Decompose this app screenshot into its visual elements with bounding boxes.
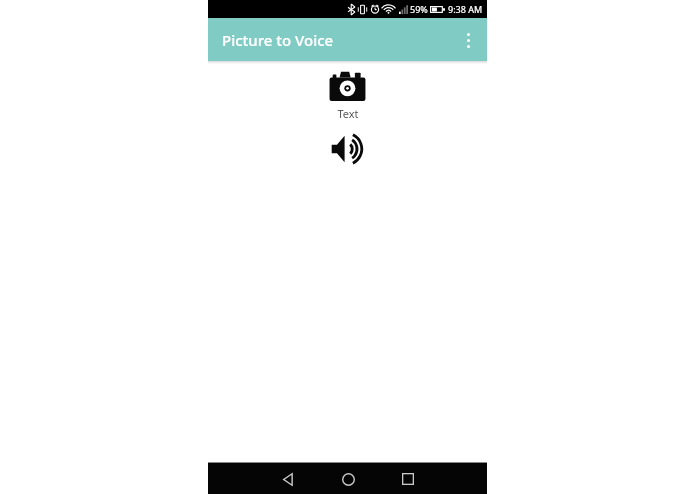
button[interactable]: More options xyxy=(455,27,481,53)
button[interactable]: Recent apps xyxy=(393,464,423,494)
staticText: 9:38 AM xyxy=(448,3,483,15)
button[interactable]: Text xyxy=(323,69,372,123)
button[interactable]: Home xyxy=(333,464,363,494)
staticText: Picture to Voice xyxy=(222,30,334,50)
staticText: Text xyxy=(337,106,359,121)
staticText: 59% xyxy=(410,3,428,15)
button[interactable]: Speak text aloud xyxy=(325,132,371,166)
button[interactable]: Back xyxy=(273,464,303,494)
